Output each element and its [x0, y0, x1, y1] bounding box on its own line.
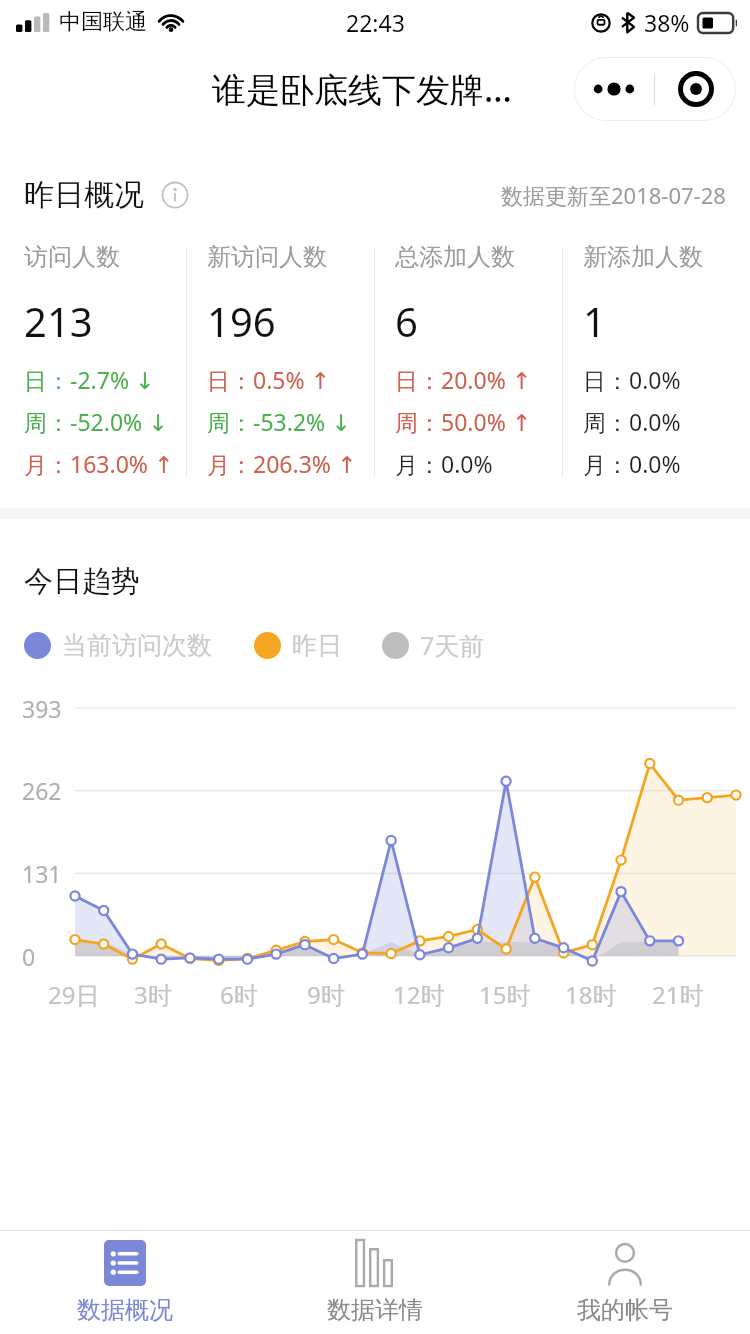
staticText: 中国联通	[59, 8, 147, 36]
button[interactable]: 总添加人数	[395, 242, 562, 490]
staticText: 新添加人数	[583, 242, 703, 272]
staticText: 访问人数	[24, 242, 120, 272]
button[interactable]: 新添加人数	[583, 242, 750, 490]
staticText: 今日趋势	[24, 563, 140, 600]
staticText: 0	[22, 941, 36, 972]
staticText: 6时	[220, 978, 258, 1011]
button[interactable]: 数据概况	[0, 1231, 250, 1334]
button[interactable]: Information	[160, 180, 190, 210]
staticText: 12时	[393, 978, 445, 1011]
staticText: 月：163.0% ↑	[24, 448, 174, 479]
staticText: 当前访问次数	[62, 630, 212, 661]
staticText: 9时	[307, 978, 345, 1011]
staticText: 1	[583, 294, 606, 348]
staticText: 日：-2.7% ↓	[24, 364, 155, 395]
staticText: 周：50.0% ↑	[395, 406, 531, 437]
staticText: 日：0.0%	[583, 364, 681, 395]
staticText: 数据概况	[77, 1295, 173, 1325]
staticText: 周：-53.2% ↓	[207, 406, 351, 437]
staticText: 3时	[134, 978, 172, 1011]
button[interactable]: 当前访问次数	[24, 630, 212, 661]
staticText: 昨日	[292, 630, 342, 661]
staticText: 数据更新至2018-07-28	[501, 180, 726, 210]
staticText: 谁是卧底线下发牌...	[212, 66, 512, 112]
staticText: 周：-52.0% ↓	[24, 406, 168, 437]
staticText: 昨日概况	[24, 176, 144, 214]
staticText: 38%	[644, 7, 690, 38]
staticText: 15时	[479, 978, 531, 1011]
staticText: 我的帐号	[577, 1295, 673, 1325]
button[interactable]: 访问人数	[24, 242, 186, 490]
button[interactable]: 昨日	[254, 630, 342, 661]
staticText: 7天前	[420, 628, 485, 662]
staticText: 196	[207, 294, 276, 348]
staticText: 18时	[565, 978, 617, 1011]
button[interactable]: Close mini program	[655, 57, 736, 121]
staticText: 日：20.0% ↑	[395, 364, 531, 395]
staticText: 131	[22, 858, 62, 889]
staticText: 月：206.3% ↑	[207, 448, 357, 479]
staticText: 22:43	[346, 7, 405, 38]
button[interactable]: More options	[574, 57, 654, 121]
staticText: 总添加人数	[395, 242, 515, 272]
staticText: 新访问人数	[207, 242, 327, 272]
button[interactable]: 数据详情	[250, 1231, 500, 1334]
staticText: 月：0.0%	[395, 448, 493, 479]
staticText: 日：0.5% ↑	[207, 364, 330, 395]
button[interactable]: 7天前	[382, 628, 485, 662]
staticText: 29日	[48, 978, 100, 1011]
staticText: 21时	[652, 978, 704, 1011]
staticText: 周：0.0%	[583, 406, 681, 437]
staticText: 393	[22, 693, 62, 724]
staticText: 数据详情	[327, 1295, 423, 1325]
button[interactable]: 新访问人数	[207, 242, 374, 490]
staticText: 月：0.0%	[583, 448, 681, 479]
button[interactable]: 我的帐号	[500, 1231, 750, 1334]
staticText: 262	[22, 775, 62, 806]
staticText: 213	[24, 294, 93, 348]
staticText: 6	[395, 294, 418, 348]
